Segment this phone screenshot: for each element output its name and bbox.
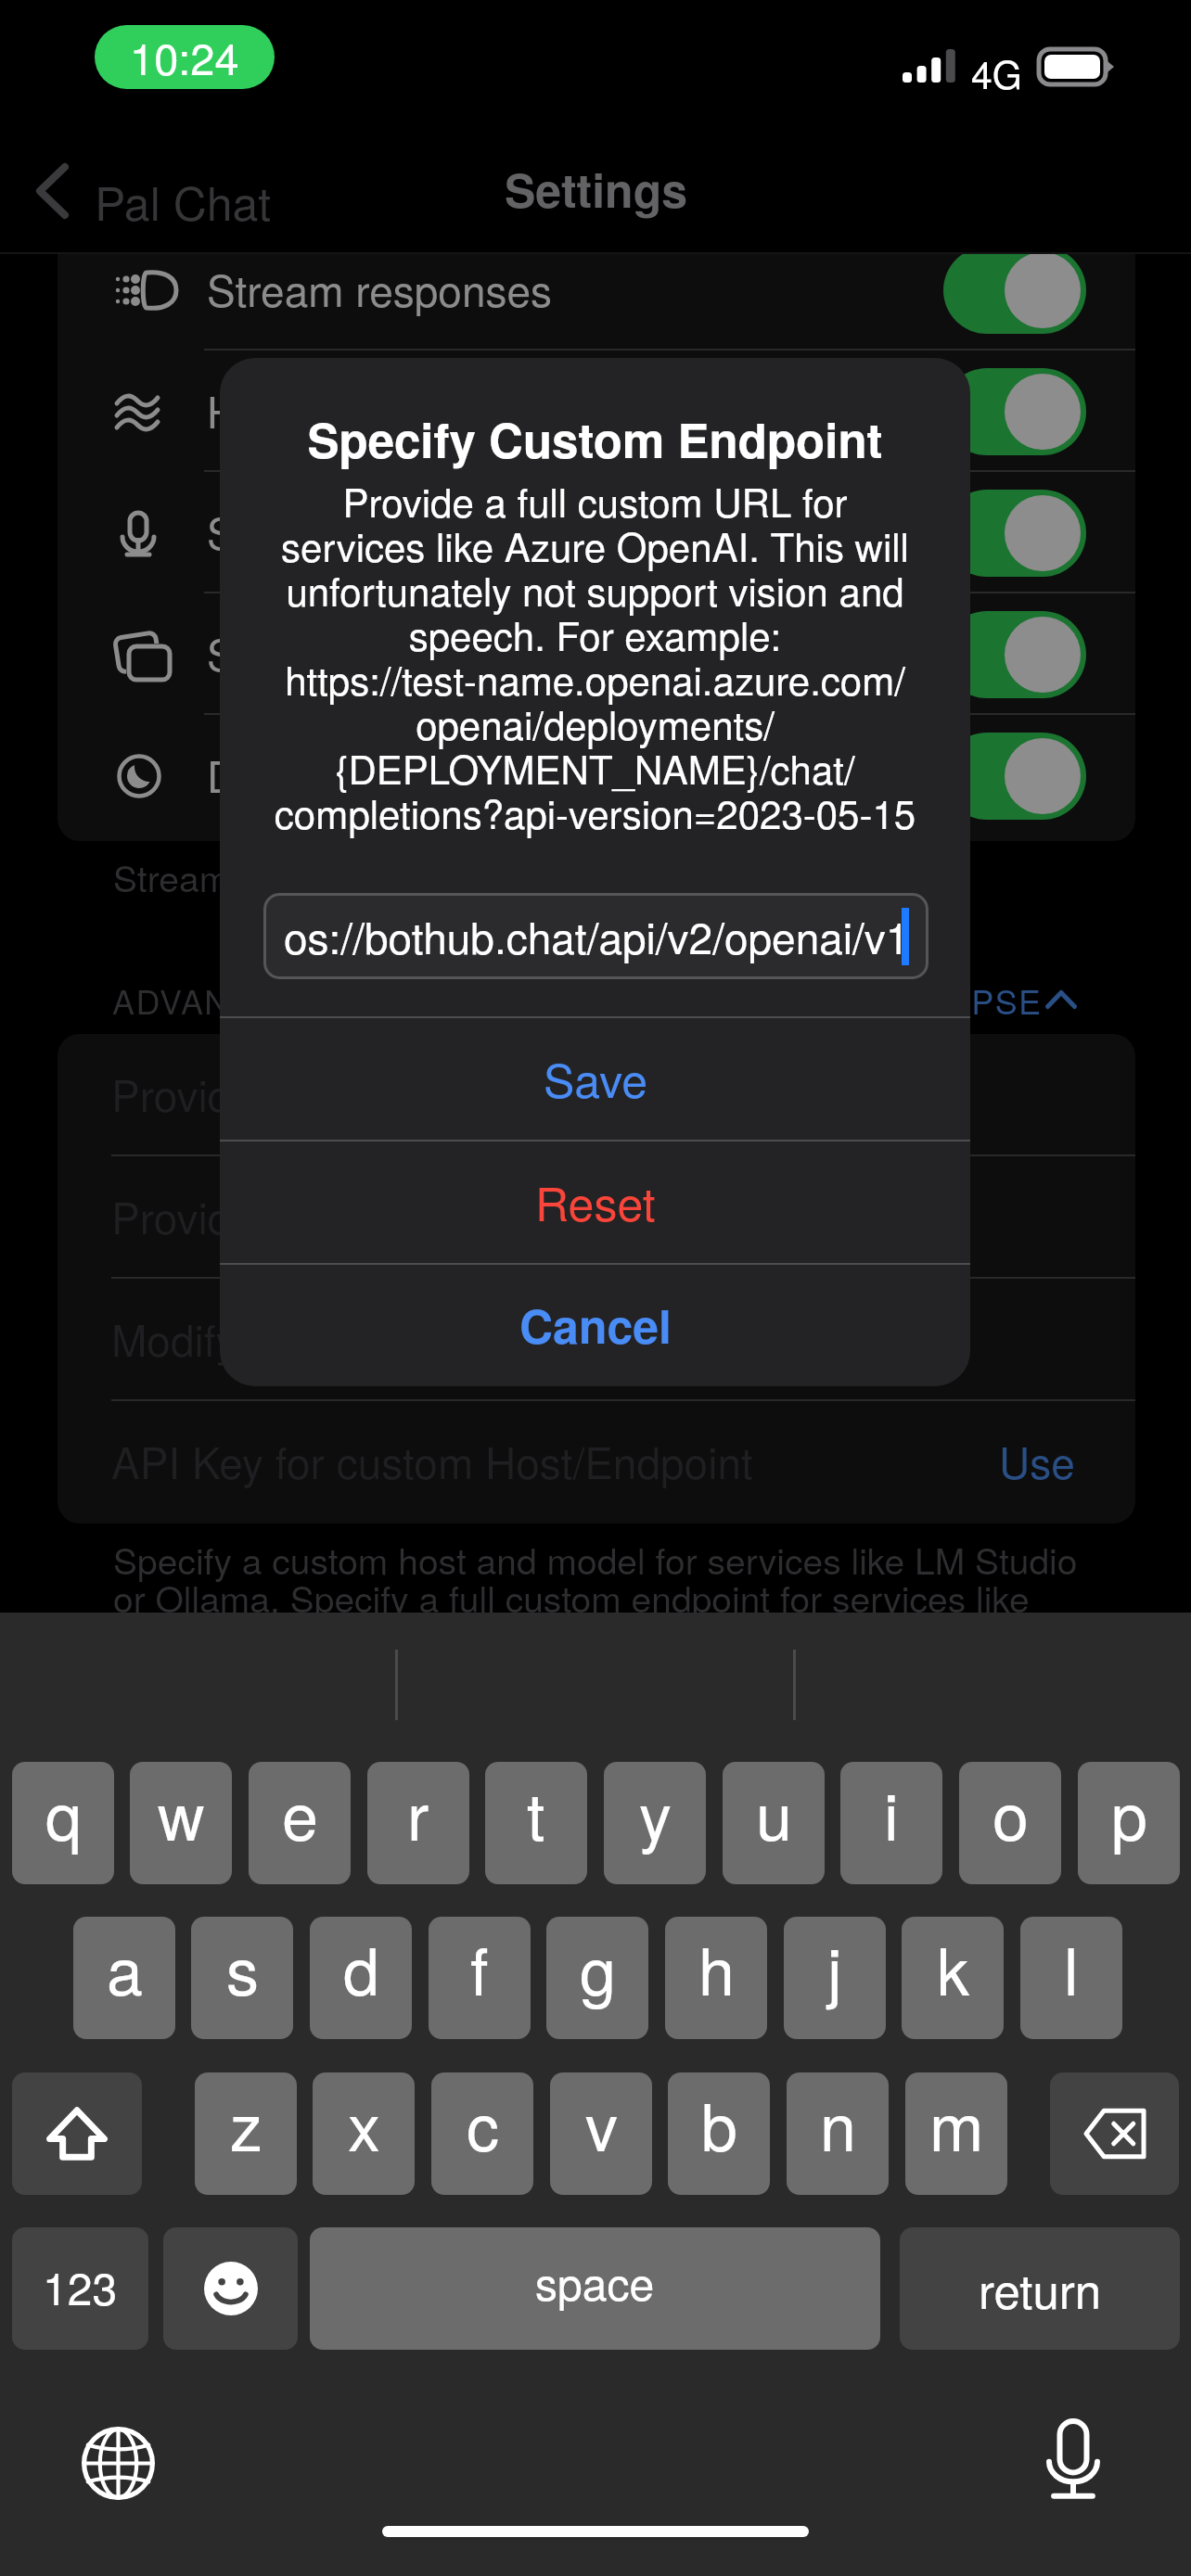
button[interactable]: Backspace	[1050, 2072, 1179, 2195]
staticText: Use	[999, 1430, 1075, 1491]
button[interactable]: return	[900, 2227, 1180, 2350]
button[interactable]: g	[546, 1917, 648, 2039]
staticText: Modify host	[111, 1307, 329, 1369]
button[interactable]: c	[431, 2072, 533, 2195]
staticText: s	[226, 1921, 259, 2014]
staticText: Stream responses as they are generated.	[113, 850, 776, 902]
button[interactable]: API Key for custom Host/Endpoint	[58, 1401, 1135, 1524]
button[interactable]: Provider model	[58, 1156, 1135, 1279]
staticText: Stream responses	[207, 258, 553, 319]
button[interactable]: Haptic feedback	[58, 351, 1135, 472]
staticText: y	[639, 1766, 672, 1859]
button[interactable]: n	[787, 2072, 889, 2195]
button[interactable]: Snapshots	[58, 593, 1135, 715]
button[interactable]: Pal Chat	[19, 148, 278, 236]
staticText: b	[701, 2077, 737, 2170]
button[interactable]: Emoji	[163, 2227, 298, 2350]
button[interactable]: v	[550, 2072, 652, 2195]
staticText: Provider model	[111, 1185, 398, 1246]
staticText: return	[979, 2254, 1102, 2322]
staticText: e	[282, 1766, 318, 1859]
staticText: Settings	[505, 156, 687, 223]
staticText: Dark mode	[207, 744, 416, 805]
staticText: x	[348, 2077, 380, 2170]
staticText: a	[107, 1921, 143, 2014]
staticText: COLLAPSE	[855, 976, 1043, 1025]
button[interactable]: q	[12, 1762, 114, 1884]
button[interactable]: Cancel	[220, 1263, 970, 1386]
button[interactable]: Modify host	[58, 1279, 1135, 1401]
staticText: API Key for custom Host/Endpoint	[111, 1430, 753, 1491]
button[interactable]: d	[310, 1917, 412, 2039]
staticText: Specify a custom host and model for serv…	[113, 1533, 1078, 1623]
staticText: v	[585, 2077, 618, 2170]
staticText: n	[820, 2077, 856, 2170]
staticText: t	[527, 1766, 545, 1859]
staticText: Cancel	[519, 1292, 672, 1358]
staticText: o	[992, 1766, 1029, 1859]
button[interactable]: s	[191, 1917, 293, 2039]
staticText: Provide a full custom URL for services l…	[220, 473, 970, 840]
staticText: 10:24	[130, 25, 239, 87]
button[interactable]: Reset	[220, 1140, 970, 1263]
button[interactable]: Dictate	[1029, 2413, 1118, 2504]
staticText: m	[929, 2077, 984, 2170]
button[interactable]: j	[784, 1917, 886, 2039]
button[interactable]: p	[1078, 1762, 1180, 1884]
button[interactable]: x	[313, 2072, 415, 2195]
staticText: Show speech button	[207, 501, 593, 562]
button[interactable]: k	[902, 1917, 1004, 2039]
button[interactable]: Show speech button	[58, 472, 1135, 593]
staticText: q	[45, 1766, 82, 1859]
staticText: r	[407, 1766, 429, 1859]
staticText: ADVANCED SETTINGS	[112, 976, 493, 1025]
button[interactable]: b	[668, 2072, 770, 2195]
staticText: f	[470, 1921, 489, 2014]
button[interactable]: t	[485, 1762, 587, 1884]
staticText: h	[698, 1921, 735, 2014]
button[interactable]: 123	[12, 2227, 148, 2350]
button[interactable]: u	[723, 1762, 825, 1884]
staticText: 123	[43, 2254, 118, 2318]
button[interactable]: i	[840, 1762, 942, 1884]
button[interactable]: r	[367, 1762, 469, 1884]
button[interactable]: z	[195, 2072, 297, 2195]
button[interactable]: h	[665, 1917, 767, 2039]
button[interactable]: Shift	[12, 2072, 142, 2195]
staticText: Snapshots	[207, 622, 408, 683]
staticText: Provider	[111, 1063, 270, 1124]
staticText: z	[230, 2077, 263, 2170]
staticText: k	[937, 1921, 969, 2014]
button[interactable]: l	[1020, 1917, 1122, 2039]
button[interactable]: Provider	[58, 1034, 1135, 1156]
staticText: 4G	[971, 45, 1022, 100]
staticText: d	[343, 1921, 379, 2014]
button[interactable]: space	[310, 2227, 880, 2350]
button[interactable]: Dark mode	[58, 715, 1135, 836]
staticText: Pal Chat	[95, 168, 272, 235]
staticText: c	[467, 2077, 499, 2170]
staticText: space	[535, 2250, 655, 2314]
staticText: g	[580, 1921, 616, 2014]
staticText: j	[827, 1921, 842, 2014]
button[interactable]: Change keyboard	[72, 2417, 163, 2508]
staticText: p	[1111, 1766, 1147, 1859]
staticText: l	[1064, 1921, 1079, 2014]
button[interactable]: y	[604, 1762, 706, 1884]
button[interactable]: m	[905, 2072, 1007, 2195]
staticText: Specify Custom Endpoint	[220, 405, 970, 473]
button[interactable]: Stream responses	[58, 254, 1135, 351]
button[interactable]: o	[959, 1762, 1061, 1884]
button[interactable]: Save	[220, 1016, 970, 1140]
button[interactable]: e	[249, 1762, 351, 1884]
button[interactable]: f	[429, 1917, 531, 2039]
button[interactable]: a	[73, 1917, 175, 2039]
staticText: i	[884, 1766, 899, 1859]
button[interactable]: w	[130, 1762, 232, 1884]
staticText: Reset	[535, 1168, 656, 1235]
staticText: Haptic feedback	[207, 379, 513, 440]
staticText: w	[158, 1766, 205, 1859]
staticText: u	[756, 1766, 792, 1859]
staticText: Save	[544, 1045, 647, 1112]
staticText: os://bothub.chat/api/v2/openai/v1	[284, 905, 910, 966]
